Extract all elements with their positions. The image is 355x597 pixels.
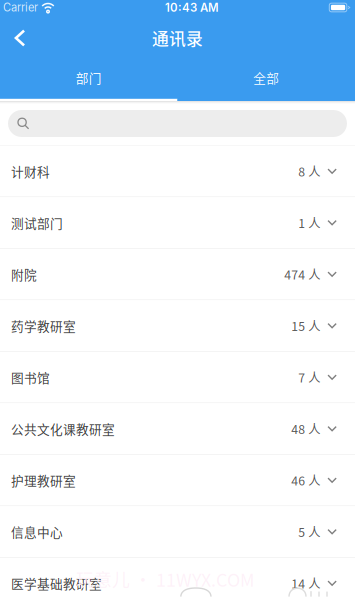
staticText: 计财科: [11, 162, 50, 180]
button[interactable]: 信息中心: [0, 506, 355, 558]
button[interactable]: Back: [0, 20, 40, 56]
staticText: 测试部门: [11, 213, 63, 232]
staticText: 部门: [76, 68, 102, 86]
button[interactable]: 计财科: [0, 146, 355, 197]
staticText: 48 人: [291, 420, 320, 438]
button[interactable]: 公共文化课教研室: [0, 403, 355, 455]
button[interactable]: 图书馆: [0, 352, 355, 403]
staticText: 7 人: [298, 368, 320, 386]
staticText: 医学基础教研室: [11, 574, 102, 592]
staticText: 5 人: [298, 523, 320, 541]
staticText: 附院: [11, 265, 37, 283]
button[interactable]: Contacts: [285, 587, 333, 597]
button[interactable]: 测试部门: [0, 197, 355, 249]
staticText: 药学教研室: [11, 316, 76, 335]
staticText: 通讯录: [152, 26, 203, 50]
button[interactable]: 部门: [0, 56, 177, 101]
button[interactable]: 医学基础教研室: [0, 558, 355, 597]
staticText: 信息中心: [11, 522, 63, 541]
staticText: 8 人: [298, 162, 320, 180]
staticText: 全部: [253, 68, 279, 86]
button[interactable]: Messages: [180, 587, 212, 597]
staticText: 公共文化课教研室: [11, 419, 115, 438]
staticText: 474 人: [284, 265, 320, 283]
button[interactable]: 全部: [177, 56, 355, 101]
staticText: 玩意儿 · 11WYX.COM: [76, 566, 255, 592]
staticText: 15 人: [291, 317, 320, 335]
staticText: 1 人: [298, 214, 320, 232]
staticText: 护理教研室: [11, 471, 76, 489]
staticText: 46 人: [291, 471, 320, 489]
staticText: 10:43 AM: [165, 1, 219, 14]
button[interactable]: 药学教研室: [0, 300, 355, 352]
button[interactable]: 附院: [0, 249, 355, 300]
staticText: Carrier: [3, 1, 38, 14]
button[interactable]: 护理教研室: [0, 455, 355, 506]
staticText: 图书馆: [11, 368, 50, 386]
staticText: 14 人: [291, 574, 320, 592]
